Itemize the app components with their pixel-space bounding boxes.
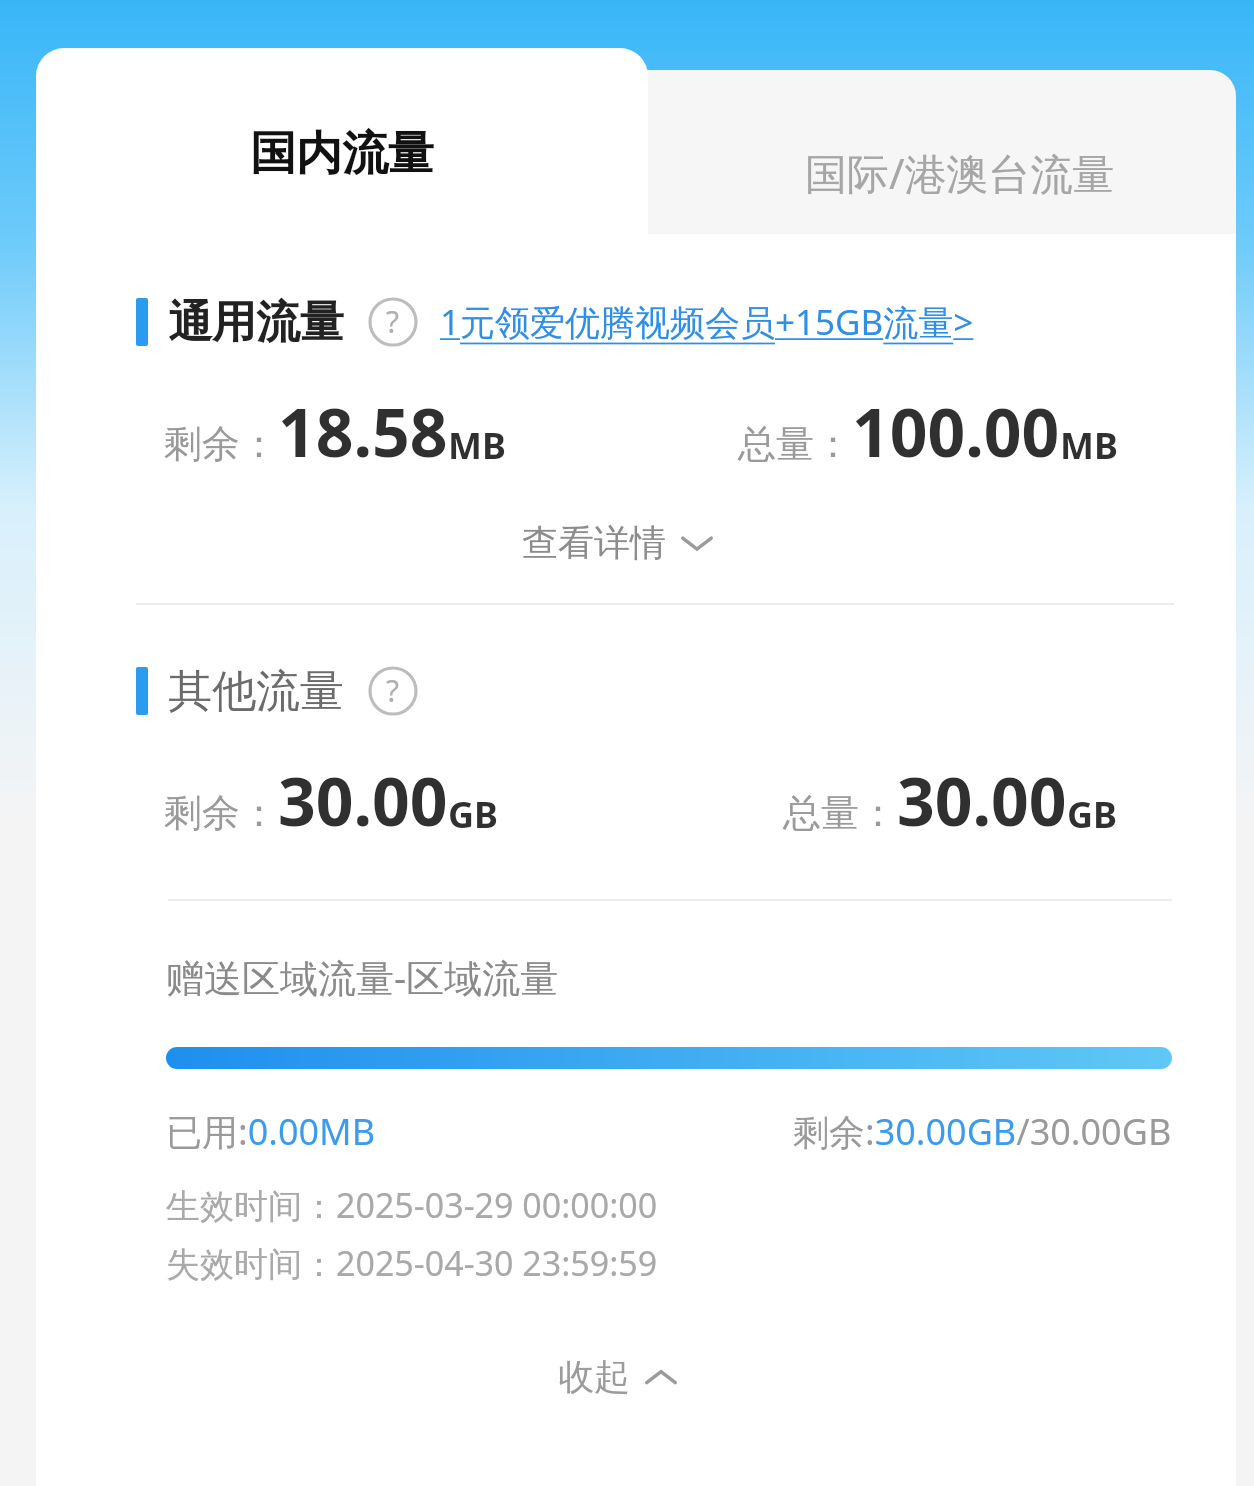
staticText: 其他流量	[168, 664, 344, 719]
staticText: GB	[1067, 790, 1118, 839]
button[interactable]: 收起	[538, 1346, 698, 1407]
staticText: 总量：	[738, 420, 852, 468]
staticText: 赠送区域流量-区域流量	[166, 951, 559, 1003]
staticText: 国际/港澳台流量	[805, 144, 1115, 201]
staticText: 剩余：	[164, 420, 278, 468]
staticText: 18.58	[278, 386, 448, 476]
button[interactable]: Help	[368, 666, 418, 716]
staticText: 30.00	[278, 755, 448, 845]
staticText: MB	[448, 421, 506, 470]
staticText: 收起	[558, 1354, 630, 1399]
staticText: ?	[386, 301, 400, 342]
staticText: MB	[1060, 421, 1118, 470]
staticText: 查看详情	[522, 520, 666, 565]
staticText: ?	[386, 670, 400, 711]
staticText: 总量：	[783, 789, 897, 837]
staticText: 剩余:30.00GB/30.00GB	[793, 1107, 1172, 1156]
staticText: 失效时间：2025-04-30 23:59:59	[166, 1240, 658, 1286]
staticText: 已用:0.00MB	[166, 1107, 376, 1156]
staticText: 1元领爱优腾视频会员+15GB流量>	[440, 298, 974, 346]
staticText: 生效时间：2025-03-29 00:00:00	[166, 1182, 658, 1228]
button[interactable]: 查看详情	[502, 512, 734, 573]
staticText: 通用流量	[168, 295, 344, 350]
button[interactable]: 国内流量	[36, 48, 648, 248]
button[interactable]: 1元领爱优腾视频会员+15GB流量>	[440, 298, 974, 346]
button[interactable]: Help	[368, 297, 418, 347]
staticText: 30.00	[897, 755, 1067, 845]
staticText: 国内流量	[250, 125, 434, 183]
staticText: 剩余：	[164, 789, 278, 837]
button[interactable]: 国际/港澳台流量	[380, 70, 1236, 250]
staticText: 100.00	[852, 386, 1060, 476]
staticText: GB	[448, 790, 499, 839]
